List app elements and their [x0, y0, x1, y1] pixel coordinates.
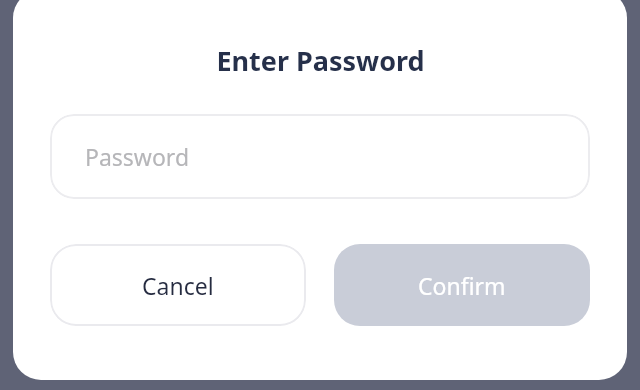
staticText: Password	[85, 141, 190, 172]
button[interactable]: Confirm password	[334, 244, 590, 326]
staticText: Enter Password	[216, 42, 425, 79]
button[interactable]: Password	[50, 114, 590, 199]
staticText: Cancel	[142, 270, 214, 301]
staticText: Confirm	[418, 270, 506, 301]
button[interactable]: Cancel	[50, 244, 306, 326]
